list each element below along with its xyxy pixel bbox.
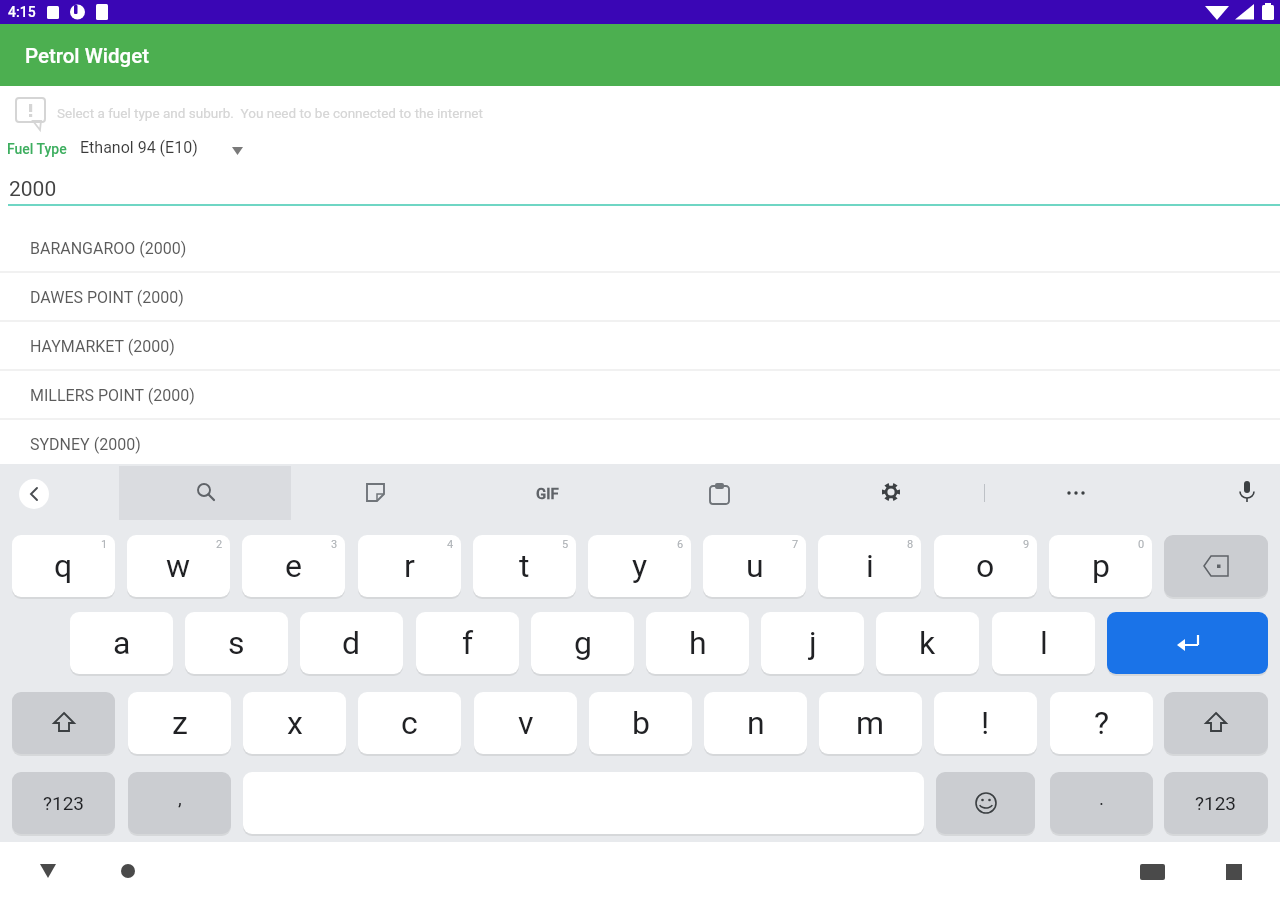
button[interactable]: , xyxy=(128,772,231,834)
staticText: c xyxy=(401,704,418,742)
button[interactable]: y xyxy=(588,535,691,597)
staticText: a xyxy=(113,624,131,662)
button[interactable]: c xyxy=(358,692,461,754)
button[interactable]: More options xyxy=(1060,478,1092,506)
staticText: GIF xyxy=(536,485,559,503)
staticText: HAYMARKET (2000) xyxy=(30,337,175,356)
button[interactable]: Select fuel type xyxy=(220,134,254,166)
button[interactable]: d xyxy=(300,612,403,674)
button[interactable]: Search xyxy=(193,480,219,506)
staticText: 4 xyxy=(447,538,454,551)
staticText: Fuel Type xyxy=(7,141,67,157)
staticText: z xyxy=(172,704,188,742)
staticText: ? xyxy=(1094,704,1110,742)
staticText: SYDNEY (2000) xyxy=(30,435,141,454)
button[interactable]: ! xyxy=(934,692,1037,754)
button[interactable]: Enter xyxy=(1107,612,1268,674)
button[interactable]: Back xyxy=(19,479,49,509)
button[interactable]: Recent apps xyxy=(1218,856,1250,888)
button[interactable]: ?123 xyxy=(12,772,115,834)
button[interactable]: j xyxy=(761,612,864,674)
button[interactable]: Emoji xyxy=(936,772,1035,834)
staticText: 5 xyxy=(562,538,569,551)
button[interactable]: x xyxy=(243,692,346,754)
button[interactable]: Shift xyxy=(1164,692,1268,754)
staticText: p xyxy=(1092,547,1110,585)
button[interactable]: Stickers xyxy=(365,482,391,508)
button[interactable]: BARANGAROO (2000) xyxy=(0,224,1280,273)
staticText: j xyxy=(809,624,817,662)
button[interactable]: Voice input xyxy=(1236,480,1262,506)
button[interactable]: Settings xyxy=(881,482,907,508)
staticText: Petrol Widget xyxy=(25,44,150,68)
staticText: t xyxy=(519,547,530,585)
staticText: MILLERS POINT (2000) xyxy=(30,386,195,405)
button[interactable]: a xyxy=(70,612,173,674)
button[interactable]: SYDNEY (2000) xyxy=(0,420,1280,469)
button[interactable]: e xyxy=(242,535,345,597)
button[interactable]: ?123 xyxy=(1164,772,1268,834)
button[interactable]: g xyxy=(531,612,634,674)
button[interactable]: q xyxy=(12,535,115,597)
button[interactable]: DAWES POINT (2000) xyxy=(0,273,1280,322)
staticText: b xyxy=(632,704,650,742)
staticText: 4:15 xyxy=(8,4,36,20)
staticText: ?123 xyxy=(43,792,85,814)
button[interactable]: n xyxy=(704,692,807,754)
staticText: 0 xyxy=(1138,538,1145,551)
staticText: x xyxy=(287,704,303,742)
staticText: Select a fuel type and suburb. You need … xyxy=(57,105,483,121)
staticText: y xyxy=(632,547,648,585)
button[interactable]: Shift xyxy=(12,692,115,754)
button[interactable]: h xyxy=(646,612,749,674)
staticText: 1 xyxy=(101,538,108,551)
button[interactable]: Switch keyboard xyxy=(1136,856,1168,888)
staticText: e xyxy=(285,547,302,585)
staticText: Ethanol 94 (E10) xyxy=(80,138,198,157)
button[interactable]: . xyxy=(1050,772,1153,834)
staticText: , xyxy=(178,787,182,809)
button[interactable]: f xyxy=(416,612,519,674)
staticText: q xyxy=(54,547,73,585)
button[interactable]: Clipboard xyxy=(709,482,735,508)
staticText: ?123 xyxy=(1195,792,1237,814)
button[interactable]: m xyxy=(819,692,922,754)
staticText: o xyxy=(976,547,995,585)
button[interactable]: p xyxy=(1049,535,1152,597)
button[interactable]: u xyxy=(703,535,806,597)
staticText: u xyxy=(746,547,764,585)
button[interactable]: t xyxy=(473,535,576,597)
button[interactable]: o xyxy=(934,535,1037,597)
button[interactable]: HAYMARKET (2000) xyxy=(0,322,1280,371)
button[interactable]: z xyxy=(128,692,231,754)
button[interactable]: Hide keyboard xyxy=(32,856,64,888)
staticText: f xyxy=(462,624,474,662)
staticText: 2000 xyxy=(9,177,57,202)
staticText: w xyxy=(166,547,191,585)
staticText: BARANGAROO (2000) xyxy=(30,239,187,258)
staticText: 8 xyxy=(907,538,914,551)
staticText: l xyxy=(1040,624,1048,662)
button[interactable]: w xyxy=(127,535,230,597)
button[interactable]: b xyxy=(589,692,692,754)
button[interactable]: v xyxy=(474,692,577,754)
staticText: 6 xyxy=(677,538,684,551)
staticText: 2 xyxy=(216,538,223,551)
staticText: d xyxy=(342,624,361,662)
button[interactable]: s xyxy=(185,612,288,674)
button[interactable]: ? xyxy=(1050,692,1153,754)
staticText: i xyxy=(866,547,874,585)
button[interactable]: Home xyxy=(112,856,144,888)
button[interactable]: l xyxy=(992,612,1095,674)
staticText: DAWES POINT (2000) xyxy=(30,288,184,307)
button[interactable]: MILLERS POINT (2000) xyxy=(0,371,1280,420)
button[interactable]: k xyxy=(876,612,979,674)
staticText: g xyxy=(574,624,592,662)
staticText: ! xyxy=(981,704,990,742)
button[interactable]: r xyxy=(358,535,461,597)
button[interactable]: Backspace xyxy=(1164,535,1268,597)
staticText: m xyxy=(856,704,885,742)
button[interactable]: i xyxy=(818,535,921,597)
staticText: 3 xyxy=(331,538,338,551)
